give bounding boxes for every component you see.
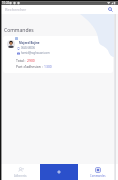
staticText: 0645 68006 (21, 46, 36, 50)
staticText: 2900 (27, 58, 35, 63)
staticText: Part d'adhesion : (16, 64, 44, 69)
staticText: hamid@raghouani.com (21, 51, 50, 55)
staticText: Total : (16, 58, 27, 63)
staticText: Commandes (90, 174, 106, 178)
button[interactable]: Search (107, 6, 114, 13)
staticText: Commandes (4, 27, 34, 34)
button[interactable]: Adherents (0, 164, 40, 180)
staticText: Rechercher (5, 7, 27, 12)
button[interactable]: Mojeed Bojine (3, 36, 113, 73)
staticText: Mojeed Bojine (19, 41, 40, 45)
button[interactable]: Commandes (78, 164, 118, 180)
button[interactable]: Add (40, 164, 78, 180)
staticText: Adherents (14, 174, 27, 178)
staticText: 1300 (44, 64, 52, 69)
staticText: 10:24 (2, 1, 10, 5)
